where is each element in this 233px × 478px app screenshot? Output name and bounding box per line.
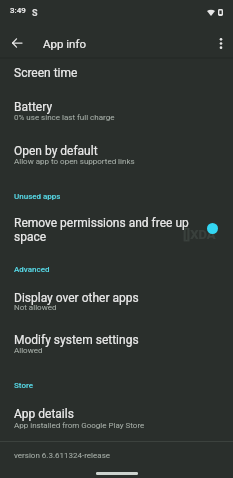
staticText: Battery bbox=[14, 100, 220, 114]
button[interactable] bbox=[0, 209, 233, 247]
staticText: Unused apps bbox=[14, 192, 220, 201]
staticText: Display over other apps bbox=[14, 291, 220, 305]
staticText: []XDA bbox=[183, 227, 216, 242]
staticText: Open by default bbox=[14, 144, 220, 158]
button[interactable] bbox=[0, 137, 233, 170]
staticText: Remove permissions and free up space bbox=[14, 216, 220, 244]
staticText: S bbox=[32, 8, 38, 19]
button[interactable] bbox=[0, 401, 233, 434]
button[interactable]: Navigate up bbox=[5, 31, 28, 54]
staticText: Modify system settings bbox=[14, 333, 220, 347]
staticText: Advanced bbox=[14, 265, 220, 274]
staticText: App installed from Google Play Store bbox=[14, 421, 220, 430]
staticText: App info bbox=[43, 37, 163, 50]
staticText: Allowed bbox=[14, 346, 220, 355]
button[interactable] bbox=[0, 93, 233, 126]
staticText: version 6.3.611324-release bbox=[14, 451, 220, 460]
staticText: Store bbox=[14, 381, 220, 390]
button[interactable] bbox=[0, 284, 233, 317]
button[interactable] bbox=[0, 327, 233, 360]
staticText: 0% use since last full charge bbox=[14, 113, 220, 122]
staticText: App details bbox=[14, 407, 220, 421]
staticText: Not allowed bbox=[14, 303, 220, 312]
staticText: Screen time bbox=[14, 66, 220, 80]
staticText: 3:49 bbox=[10, 6, 40, 15]
staticText: Allow app to open supported links bbox=[14, 157, 220, 166]
button[interactable] bbox=[0, 60, 233, 93]
button[interactable]: More options bbox=[211, 32, 230, 51]
